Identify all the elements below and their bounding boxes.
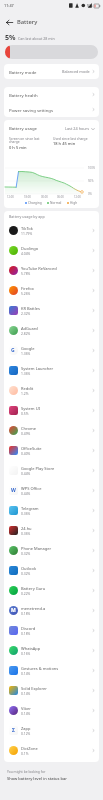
staticText: Gestures & motions (21, 666, 59, 671)
staticText: DictZone (21, 746, 38, 751)
staticText: G (11, 347, 15, 354)
button[interactable]: Chrome (4, 420, 99, 440)
button[interactable]: AdGuard (4, 320, 99, 340)
staticText: 0.18% (21, 611, 31, 615)
staticText: Google (21, 346, 35, 351)
staticText: 2.32% (21, 311, 31, 315)
staticText: 12:00 (74, 195, 81, 199)
staticText: Battery mode (9, 69, 37, 75)
button[interactable]: System Launcher (4, 360, 99, 380)
staticText: 0.18% (21, 631, 31, 635)
button[interactable]: W (4, 480, 99, 500)
button[interactable]: Battery health (4, 87, 99, 102)
staticText: 0.49% (21, 431, 31, 435)
staticText: Firefox (21, 286, 34, 291)
staticText: Phone Manager (21, 546, 52, 551)
staticText: 0.44% (21, 491, 31, 495)
staticText: 0.12% (21, 731, 31, 735)
staticText: 5% (5, 32, 16, 42)
staticText: 100% (88, 166, 96, 170)
staticText: WPS Office (21, 486, 42, 491)
button[interactable]: Battery mode (4, 64, 99, 79)
staticText: Normal (50, 201, 62, 205)
staticText: Discord (21, 626, 36, 631)
button[interactable]: Phone Manager (4, 540, 99, 560)
staticText: 0.32% (21, 571, 31, 575)
staticText: Chrome (21, 426, 36, 431)
staticText: Viber (21, 706, 31, 711)
staticText: W (11, 487, 16, 494)
staticText: Battery Guru (21, 586, 46, 591)
staticText: Battery health (9, 92, 38, 98)
staticText: 0.14% (21, 691, 31, 695)
button[interactable]: Duolingo (4, 240, 99, 260)
staticText: Used since last charge (53, 136, 88, 140)
button[interactable]: Power saving settings (4, 102, 99, 117)
staticText: 1.36% (21, 371, 31, 375)
staticText: 00:00 (41, 195, 48, 199)
button[interactable]: Firefox (4, 280, 99, 300)
button[interactable]: Outlook (4, 560, 99, 580)
button[interactable]: Battery Guru (4, 580, 99, 600)
staticText: Charging (28, 201, 42, 205)
button[interactable]: System UI (4, 400, 99, 420)
staticText: 0.32% (21, 551, 31, 555)
staticText: 0.14% (21, 711, 31, 715)
button[interactable]: Σ (4, 720, 99, 740)
staticText: AdGuard (21, 326, 38, 331)
button[interactable]: G (4, 340, 99, 360)
staticText: Reddit (21, 386, 34, 391)
staticText: 11.79% (21, 231, 33, 235)
button[interactable]: Solid Explorer (4, 680, 99, 700)
button[interactable]: Telegram (4, 500, 99, 520)
staticText: 5% (87, 3, 93, 8)
button[interactable]: WhatsApp (4, 640, 99, 660)
staticText: Show battery level in status bar (7, 776, 68, 781)
button[interactable]: Reddit (4, 380, 99, 400)
button[interactable]: KR Battles (4, 300, 99, 320)
staticText: Can last about 28 min (18, 36, 55, 41)
button[interactable]: Viber (4, 700, 99, 720)
staticText: Last 24 hours (65, 126, 90, 131)
staticText: 11:47 (4, 3, 14, 8)
staticText: OfficeSuite (21, 446, 42, 451)
staticText: Balanced mode (62, 69, 90, 74)
staticText: Σ (12, 727, 15, 734)
staticText: M (11, 607, 16, 614)
staticText: YouTube ReVanced (21, 266, 57, 271)
staticText: Power saving settings (9, 107, 54, 113)
staticText: 2.82% (21, 331, 31, 335)
button[interactable]: 24.hu (4, 520, 99, 540)
staticText: 5.78% (21, 271, 31, 275)
staticText: Google Play Store (21, 466, 55, 471)
button[interactable]: YouTube ReVanced (4, 260, 99, 280)
button[interactable]: Google Play Store (4, 460, 99, 480)
staticText: Battery usage (9, 125, 38, 131)
staticText: 18 h 45 min (53, 141, 76, 146)
staticText: You might be looking for (7, 769, 46, 773)
button[interactable]: Last 24 hours (64, 126, 96, 131)
staticText: 0.36% (21, 511, 31, 515)
staticText: 0.5% (21, 411, 29, 415)
staticText: System Launcher (21, 366, 54, 371)
staticText: KR Battles (21, 306, 40, 311)
staticText: 1.36% (21, 351, 31, 355)
staticText: WhatsApp (21, 646, 41, 651)
staticText: 4.04% (21, 251, 31, 255)
staticText: System UI (21, 406, 40, 411)
button[interactable]: Discord (4, 620, 99, 640)
button[interactable]: M (4, 600, 99, 620)
button[interactable]: TikTok (4, 220, 99, 240)
staticText: Battery usage by app (9, 214, 45, 219)
button[interactable]: Show battery level in status bar (7, 776, 96, 781)
button[interactable]: Back (2, 15, 16, 29)
button[interactable]: DictZone (4, 740, 99, 760)
staticText: Battery (17, 18, 38, 26)
staticText: 0.22% (21, 591, 31, 595)
button[interactable]: OfficeSuite (4, 440, 99, 460)
staticText: 5.26% (21, 291, 31, 295)
button[interactable]: Gestures & motions (4, 660, 99, 680)
staticText: 0.40% (21, 451, 31, 455)
staticText: High (70, 201, 78, 205)
staticText: Duolingo (21, 246, 39, 251)
